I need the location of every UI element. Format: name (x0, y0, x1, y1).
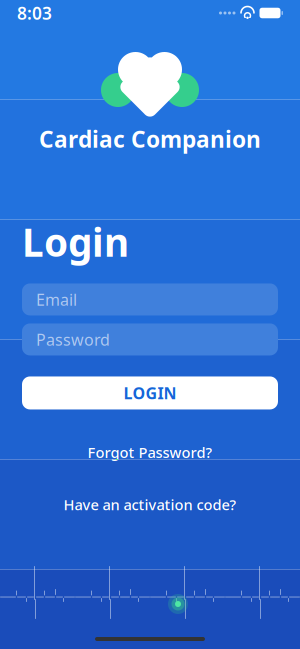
staticText: Login (22, 216, 129, 267)
staticText: Email (36, 289, 77, 310)
staticText: LOGIN (123, 382, 176, 403)
staticText: 8:03 (17, 1, 52, 24)
button[interactable]: Password (22, 323, 278, 355)
button[interactable]: Forgot Password? (71, 436, 228, 468)
button[interactable]: Have an activation code? (47, 489, 252, 520)
staticText: Have an activation code? (63, 495, 236, 514)
staticText: Password (36, 329, 110, 350)
staticText: Forgot Password? (87, 442, 212, 462)
button[interactable]: LOGIN (22, 376, 278, 409)
staticText: Cardiac Companion (39, 124, 261, 154)
button[interactable]: Email (22, 283, 278, 315)
